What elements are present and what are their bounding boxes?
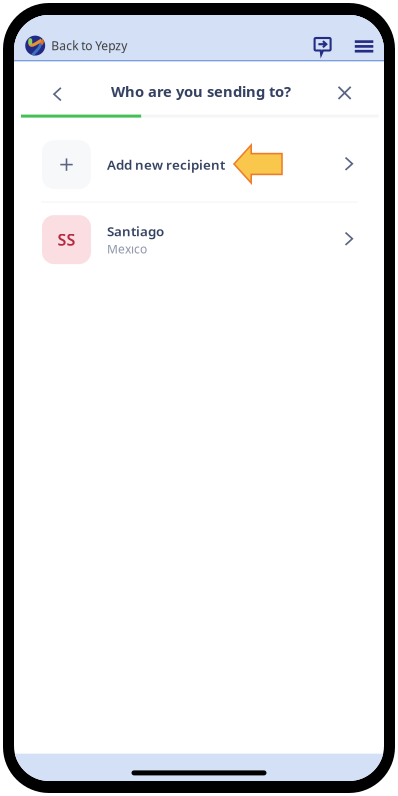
staticText: SS: [57, 229, 75, 250]
button[interactable]: Menu: [352, 37, 376, 55]
button[interactable]: Back: [42, 77, 75, 113]
button[interactable]: Add new recipient: [14, 128, 384, 202]
button[interactable]: SS: [14, 203, 384, 277]
staticText: Add new recipient: [107, 156, 225, 173]
staticText: Mexico: [107, 241, 147, 257]
staticText: Santiago: [107, 222, 164, 240]
staticText: Back to Yepzy: [51, 38, 127, 53]
button[interactable]: Back to Yepzy: [25, 32, 127, 60]
button[interactable]: Close: [327, 75, 363, 111]
staticText: Who are you sending to?: [111, 82, 291, 101]
button[interactable]: Messages: [311, 34, 335, 59]
